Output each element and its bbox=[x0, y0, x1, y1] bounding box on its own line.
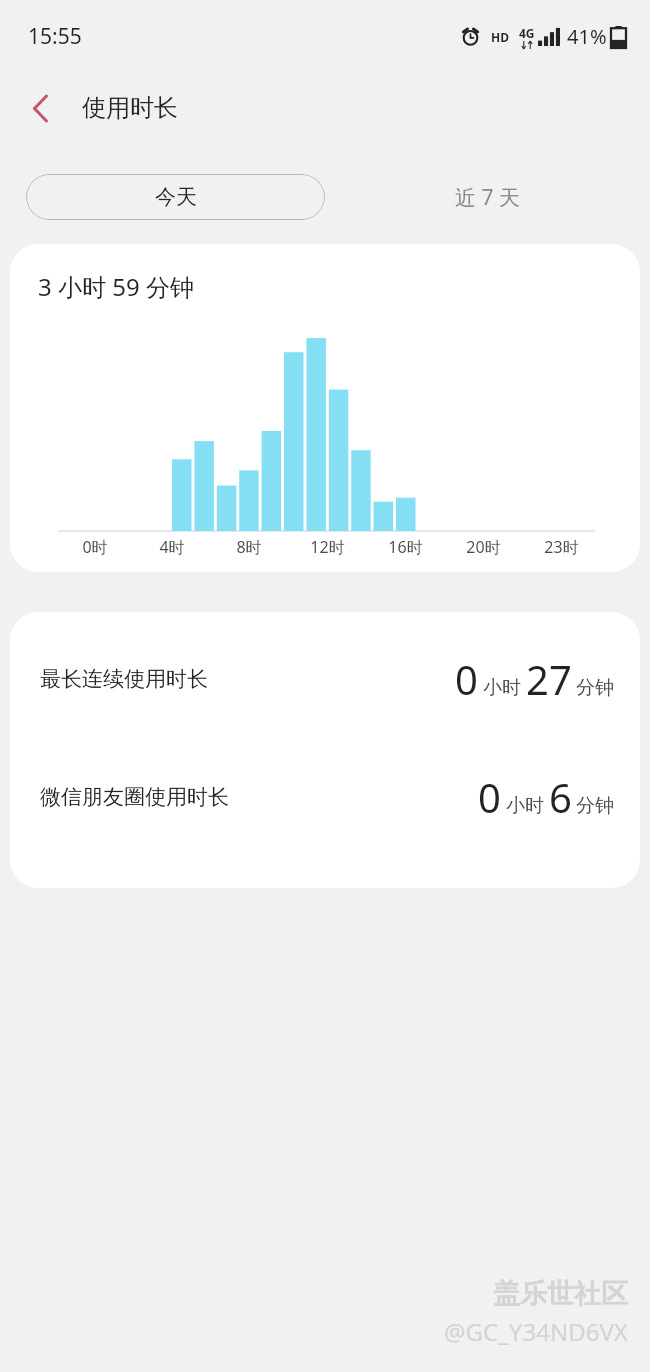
staticText: 0 bbox=[455, 652, 478, 706]
button[interactable]: 微信朋友圈使用时长 bbox=[10, 768, 640, 826]
button[interactable]: 3 小时 59 分钟 bbox=[10, 244, 640, 572]
staticText: @GC_Y34ND6VX bbox=[444, 1315, 628, 1348]
staticText: 0 bbox=[478, 770, 501, 824]
staticText: 4时 bbox=[159, 536, 185, 558]
staticText: 0时 bbox=[82, 536, 108, 558]
staticText: 近 7 天 bbox=[455, 183, 520, 212]
staticText: 27 bbox=[526, 652, 572, 706]
staticText: 最长连续使用时长 bbox=[40, 666, 208, 692]
button[interactable]: 最长连续使用时长 bbox=[10, 650, 640, 708]
staticText: 23时 bbox=[544, 536, 579, 558]
staticText: 微信朋友圈使用时长 bbox=[40, 784, 229, 810]
staticText: 小时 bbox=[506, 794, 544, 818]
staticText: 12时 bbox=[310, 536, 345, 558]
staticText: 小时 bbox=[483, 676, 521, 700]
staticText: 使用时长 bbox=[82, 93, 178, 123]
staticText: 15:55 bbox=[28, 22, 82, 51]
staticText: 6 bbox=[549, 770, 572, 824]
button[interactable]: 近 7 天 bbox=[325, 174, 650, 220]
staticText: HD bbox=[491, 29, 509, 45]
staticText: 16时 bbox=[388, 536, 423, 558]
staticText: 41% bbox=[567, 23, 607, 50]
staticText: 盖乐世社区 bbox=[493, 1277, 628, 1311]
staticText: 4G bbox=[519, 25, 535, 41]
staticText: 8时 bbox=[236, 536, 262, 558]
staticText: 20时 bbox=[466, 536, 501, 558]
button[interactable]: 今天 bbox=[26, 174, 325, 220]
button[interactable]: Back bbox=[16, 84, 64, 132]
staticText: 3 小时 59 分钟 bbox=[38, 270, 194, 303]
staticText: 今天 bbox=[155, 184, 197, 210]
staticText: 分钟 bbox=[576, 676, 614, 700]
staticText: 分钟 bbox=[576, 794, 614, 818]
